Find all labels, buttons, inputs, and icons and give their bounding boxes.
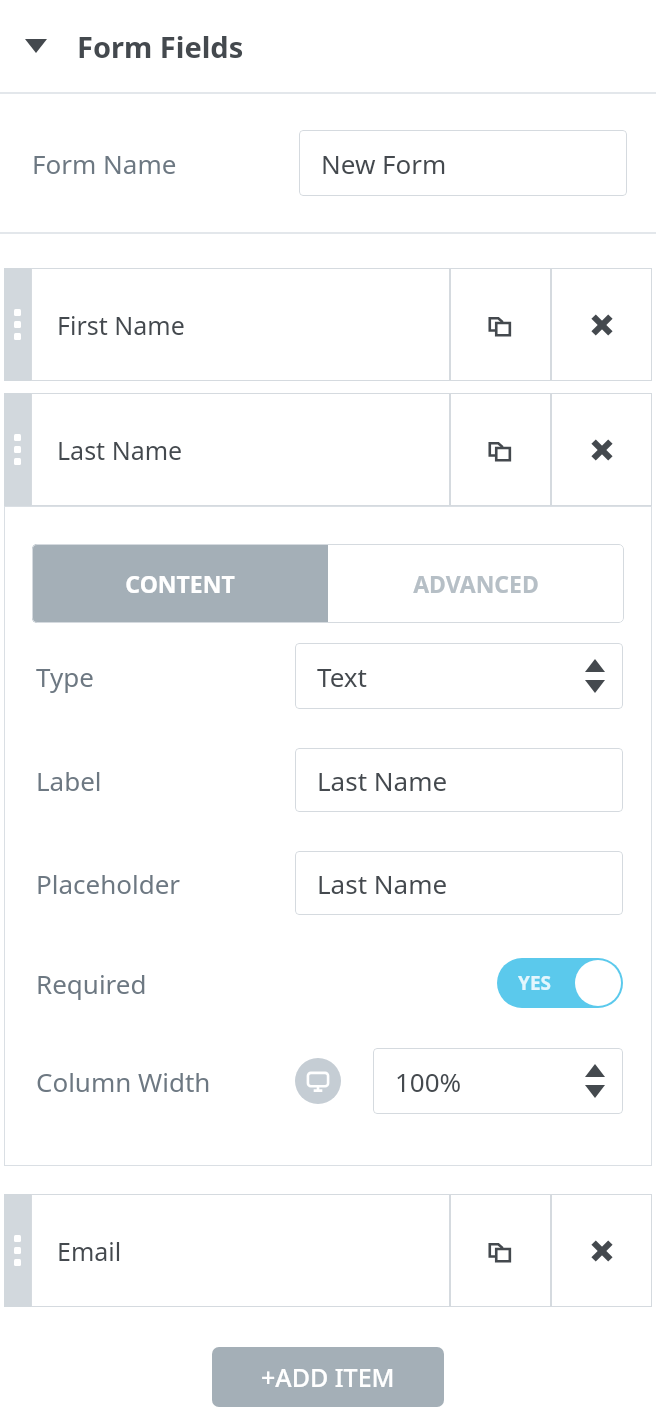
staticText: Last Name [57, 433, 183, 467]
button[interactable]: First Name [31, 268, 450, 381]
button[interactable]: ADVANCED [328, 544, 624, 623]
button[interactable]: Form Fields [0, 0, 656, 92]
button[interactable]: Desktop [295, 1058, 341, 1104]
button[interactable]: Last Name [31, 393, 450, 506]
button[interactable]: CONTENT [32, 544, 328, 623]
staticText: Type [36, 659, 94, 694]
button[interactable]: New Form [299, 130, 627, 196]
button[interactable]: Text [295, 643, 623, 709]
button[interactable]: Remove [551, 393, 652, 506]
button[interactable]: Last Name [295, 748, 623, 812]
staticText: 100% [395, 1064, 462, 1099]
staticText: Text [317, 659, 367, 694]
staticText: Label [36, 763, 102, 798]
staticText: YES [518, 970, 552, 996]
staticText: Last Name [317, 763, 448, 798]
staticText: CONTENT [125, 568, 235, 599]
staticText: Column Width [36, 1064, 211, 1099]
button[interactable]: Duplicate [450, 268, 551, 381]
button[interactable]: Duplicate [450, 393, 551, 506]
staticText: Email [57, 1234, 122, 1268]
button[interactable]: 100% [373, 1048, 623, 1114]
staticText: Placeholder [36, 866, 181, 901]
staticText: First Name [57, 308, 185, 342]
staticText: +ADD ITEM [261, 1360, 395, 1394]
button[interactable]: Last Name [295, 851, 623, 915]
staticText: Form Name [32, 146, 177, 181]
button[interactable]: Duplicate [450, 1194, 551, 1307]
staticText: Required [36, 966, 147, 1001]
button[interactable]: Remove [551, 1194, 652, 1307]
button[interactable]: +ADD ITEM [212, 1347, 444, 1407]
button[interactable]: Remove [551, 268, 652, 381]
staticText: New Form [321, 146, 447, 181]
staticText: ADVANCED [413, 568, 539, 599]
button[interactable]: Required toggle [497, 958, 623, 1008]
button[interactable]: Email [31, 1194, 450, 1307]
staticText: Form Fields [77, 27, 244, 66]
staticText: Last Name [317, 866, 448, 901]
